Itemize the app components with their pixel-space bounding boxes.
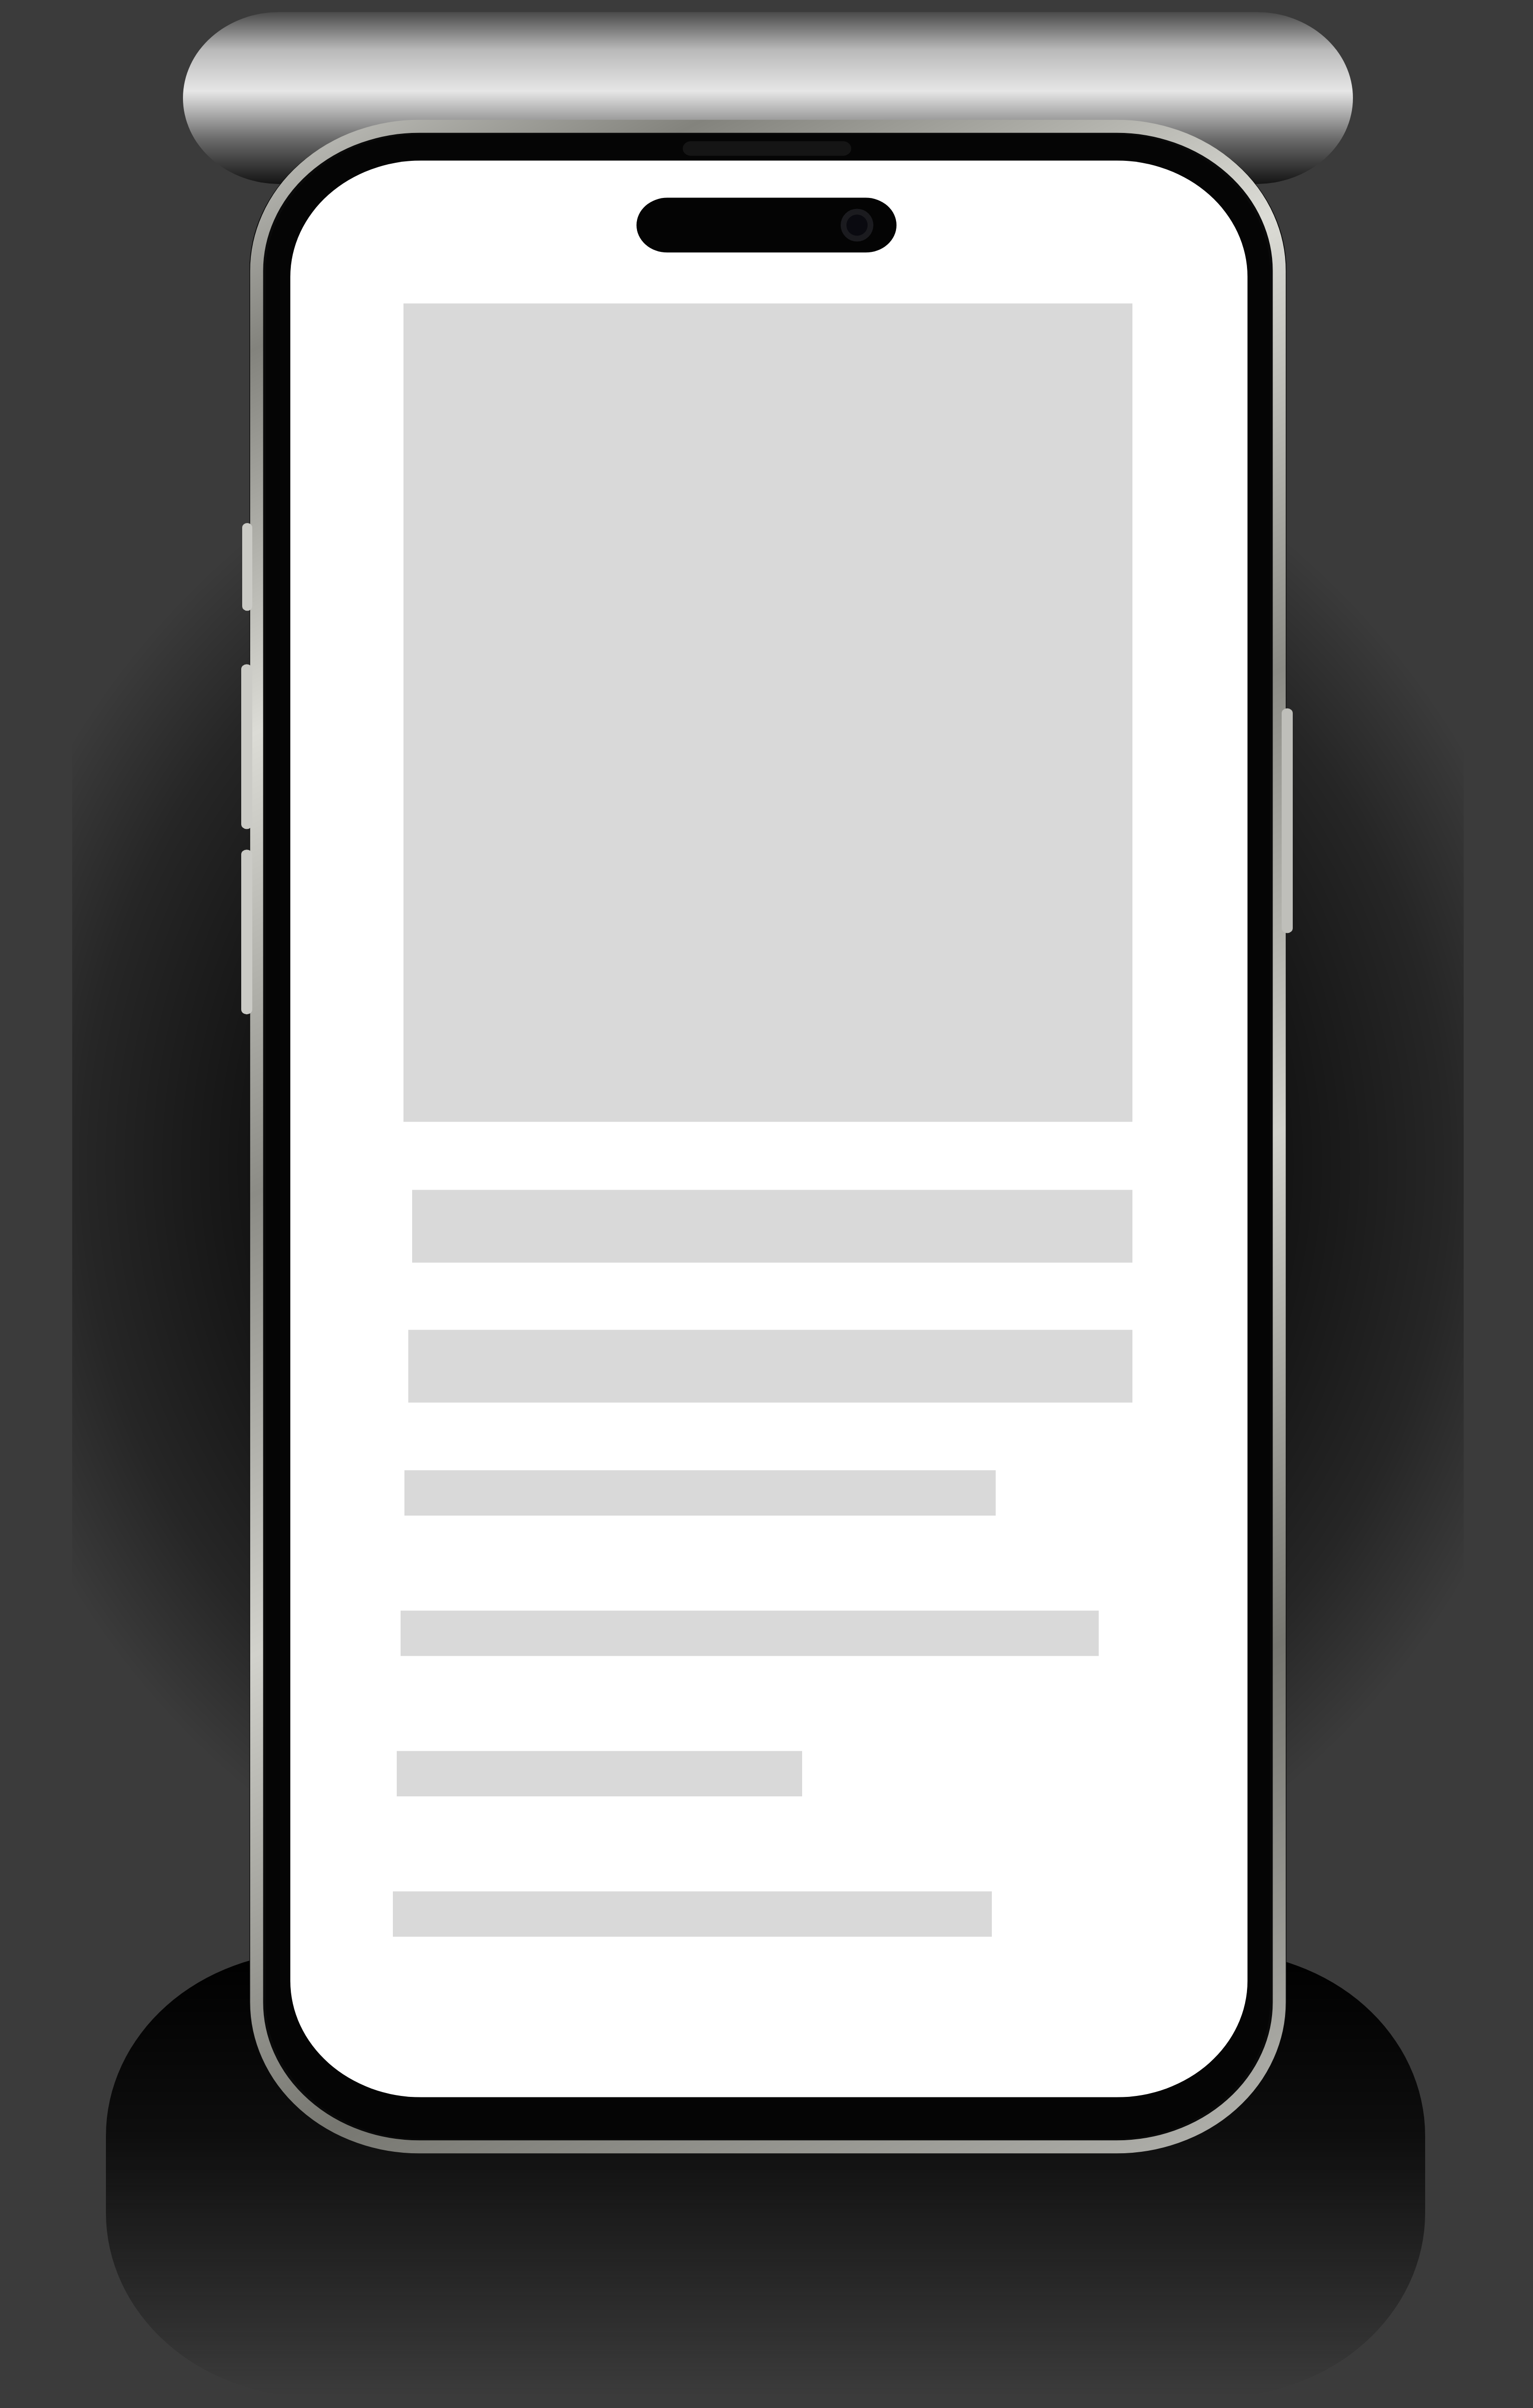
button[interactable]: Content loading placeholder (0, 0, 1533, 2408)
